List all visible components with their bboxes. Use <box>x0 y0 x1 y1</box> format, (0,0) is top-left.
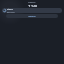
button[interactable]: Activity <box>2 8 62 13</box>
other: Activity <box>3 9 6 12</box>
button[interactable]: Details <box>6 14 58 18</box>
staticText: 7 248 <box>28 4 37 7</box>
staticText: TODAY <box>28 1 36 3</box>
button[interactable]: TODAY <box>2 1 62 3</box>
staticText: goal 80% <box>7 11 15 13</box>
staticText: Steps <box>7 8 13 11</box>
staticText: Details <box>28 15 36 18</box>
